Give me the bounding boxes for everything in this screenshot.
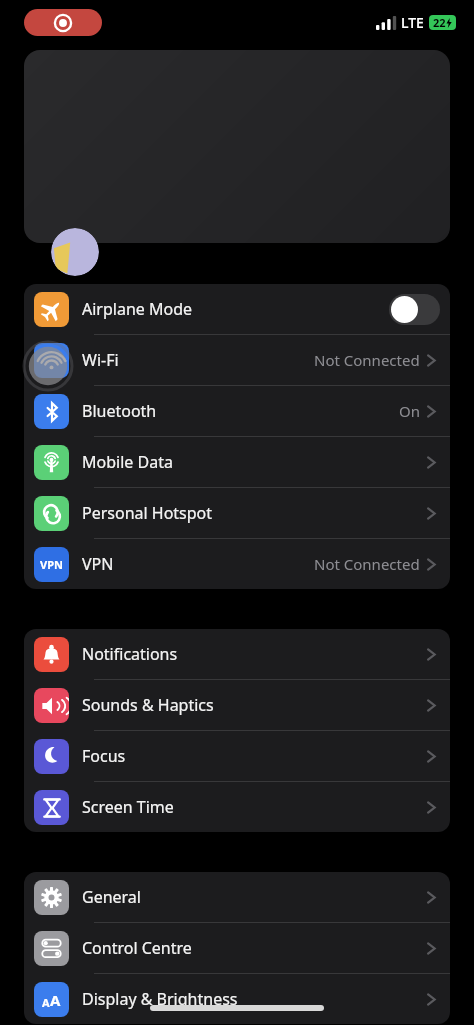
button[interactable]: Wi-Fi	[24, 335, 450, 385]
staticText: VPN	[82, 553, 114, 575]
staticText: Notifications	[82, 643, 178, 665]
staticText: Sounds & Haptics	[82, 694, 214, 716]
staticText: Wi-Fi	[82, 349, 119, 371]
button[interactable]: A	[24, 974, 450, 1024]
button[interactable]: Screen Time	[24, 782, 450, 832]
staticText: General	[82, 886, 141, 908]
staticText: LTE	[401, 13, 424, 32]
button[interactable]: Personal Hotspot	[24, 488, 450, 538]
button[interactable]: Bluetooth	[24, 386, 450, 436]
button[interactable]	[24, 50, 450, 243]
button[interactable]: Control Centre	[24, 923, 450, 973]
staticText: Personal Hotspot	[82, 502, 213, 524]
staticText: Not Connected	[314, 350, 420, 370]
staticText: On	[399, 401, 420, 421]
button[interactable]: Mobile Data	[24, 437, 450, 487]
staticText: Display & Brightness	[82, 988, 238, 1010]
staticText: Not Connected	[314, 554, 420, 574]
staticText: Mobile Data	[82, 451, 173, 473]
staticText: A	[42, 995, 50, 1010]
button[interactable]: Airplane Mode	[24, 284, 450, 334]
staticText: Airplane Mode	[82, 298, 193, 320]
staticText: Screen Time	[82, 796, 174, 818]
staticText: Focus	[82, 745, 126, 767]
staticText: Bluetooth	[82, 400, 157, 422]
button[interactable]: VPN	[24, 539, 450, 589]
staticText: VPN	[40, 557, 63, 572]
staticText: A	[50, 990, 61, 1010]
button[interactable]: General	[24, 872, 450, 922]
staticText: 22	[433, 15, 446, 30]
button[interactable]: Sounds & Haptics	[24, 680, 450, 730]
button[interactable]: Notifications	[24, 629, 450, 679]
button[interactable]: Recording	[24, 9, 102, 36]
staticText: Control Centre	[82, 937, 192, 959]
button[interactable]: Focus	[24, 731, 450, 781]
